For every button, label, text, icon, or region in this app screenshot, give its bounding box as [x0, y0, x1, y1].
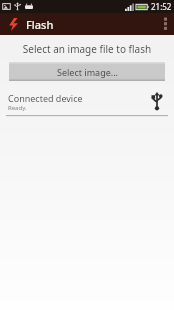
staticText: Flash: [26, 17, 54, 32]
staticText: 21:52: [151, 1, 172, 12]
button[interactable]: More options: [156, 13, 174, 35]
staticText: Connected device: [8, 92, 83, 104]
staticText: Select an image file to flash: [0, 42, 174, 56]
other: USB connected: [148, 90, 166, 113]
button[interactable]: Select image...: [9, 62, 165, 81]
button[interactable]: Connected device: [0, 88, 174, 115]
staticText: Ready.: [8, 104, 27, 112]
staticText: Select image...: [57, 66, 118, 78]
